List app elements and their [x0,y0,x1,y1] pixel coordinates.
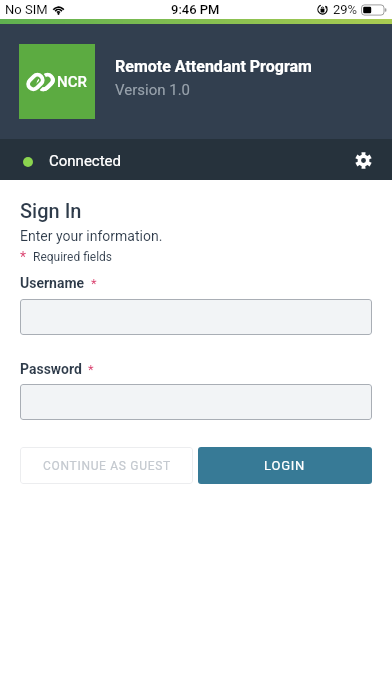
staticText: No SIM [5,2,48,17]
staticText: Sign In [20,199,82,222]
staticText: Enter your information. [20,228,163,244]
staticText: Remote Attendant Program [115,57,312,76]
staticText: 9:46 PM [171,2,220,17]
staticText: Required fields [33,250,113,264]
staticText: LOGIN [264,458,306,473]
button[interactable]: LOGIN [198,447,372,484]
staticText: NCR [57,73,87,91]
staticText: * [20,249,27,265]
staticText: Connected [49,152,122,170]
button[interactable]: Username field [20,299,372,335]
staticText: 29% [333,2,358,17]
staticText: Password [20,361,82,377]
staticText: * [91,276,97,291]
staticText: Version 1.0 [115,81,191,99]
staticText: CONTINUE AS GUEST [43,459,171,473]
button[interactable]: CONTINUE AS GUEST [20,447,193,484]
button[interactable]: Password field [20,384,372,420]
staticText: * [88,362,94,377]
button[interactable]: Settings [346,143,380,177]
staticText: Username [20,275,85,291]
